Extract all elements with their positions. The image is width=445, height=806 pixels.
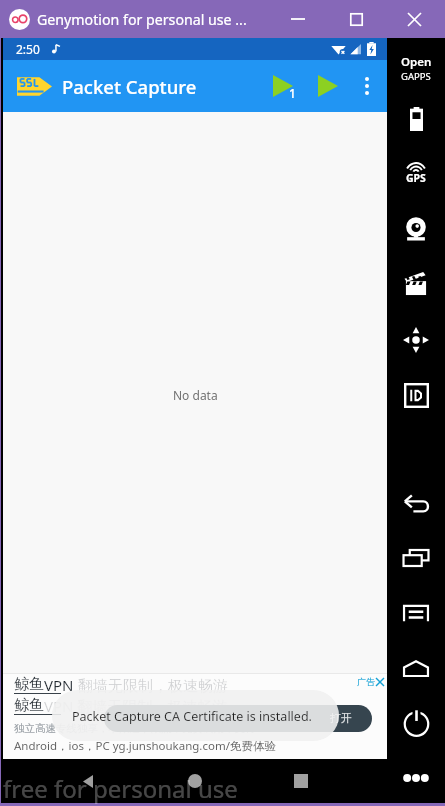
button[interactable]: Open certificate settings	[104, 705, 372, 732]
button[interactable]: Start capture	[305, 60, 350, 112]
staticText: free for personal use	[3, 772, 238, 805]
staticText: Open	[401, 54, 432, 70]
staticText: GAPPS	[401, 70, 431, 83]
button[interactable]: Home	[387, 649, 445, 687]
button[interactable]: Webcam	[387, 210, 445, 248]
button[interactable]: Battery	[387, 100, 445, 138]
button[interactable]: More	[387, 759, 445, 797]
button[interactable]: Start capture for one app	[257, 60, 309, 112]
button[interactable]: Maximize	[327, 0, 385, 38]
staticText: 翻墙无限制，极速畅游	[74, 675, 228, 695]
staticText: Packet Capture CA Certificate is install…	[72, 708, 312, 725]
staticText: 独立高速	[14, 722, 56, 735]
staticText: 鲸鱼	[14, 696, 44, 715]
button[interactable]: GPS	[387, 149, 445, 187]
staticText: 1	[289, 85, 296, 101]
button[interactable]: Move device	[387, 321, 445, 359]
button[interactable]: Minimize	[269, 0, 327, 38]
staticText: No data	[173, 387, 218, 403]
button[interactable]: Close	[385, 0, 443, 38]
button[interactable]: Home	[160, 759, 230, 803]
staticText: 2:50	[16, 41, 40, 57]
button[interactable]: Identifiers	[387, 376, 445, 414]
staticText: VPN 翻墙无限制，极速畅游	[44, 696, 228, 716]
staticText: VPN	[44, 675, 74, 695]
button[interactable]: Menu	[387, 594, 445, 632]
staticText: GPS	[406, 171, 426, 185]
button[interactable]: Back	[387, 484, 445, 522]
button[interactable]: Close advertisement	[357, 676, 385, 687]
staticText: 鲸鱼	[14, 675, 44, 694]
button[interactable]: Screen recorder	[387, 265, 445, 303]
staticText: Android，ios，PC yg.junshoukang.com/免费体验	[14, 738, 276, 754]
staticText: 广告	[357, 676, 375, 687]
button[interactable]: Power	[387, 703, 445, 741]
button[interactable]: Recent apps	[266, 759, 336, 803]
staticText: Genymotion for personal use ...	[37, 10, 247, 29]
button[interactable]: 鲸鱼	[3, 673, 387, 759]
staticText: Packet Capture	[62, 74, 197, 99]
button[interactable]: More options	[347, 60, 387, 112]
staticText: 专线独享，不限速不限流，免费试用，支付	[56, 722, 256, 735]
button[interactable]: Recent apps	[387, 539, 445, 577]
staticText: 打开	[330, 711, 352, 725]
button[interactable]: Back	[53, 759, 123, 803]
button[interactable]: OpenGApps	[387, 54, 445, 83]
